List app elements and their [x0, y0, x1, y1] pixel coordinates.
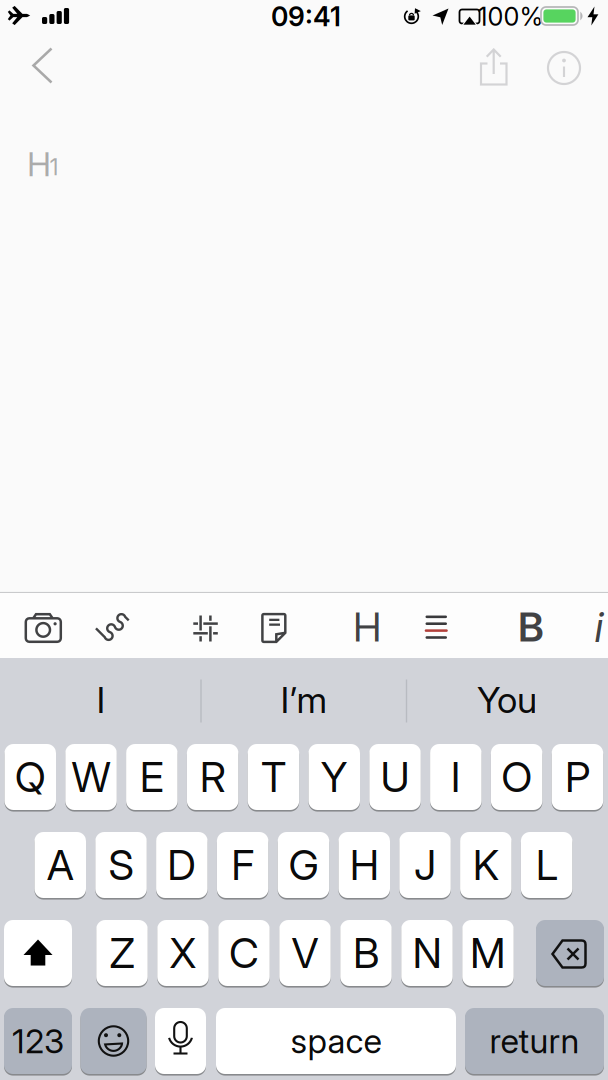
staticText: B — [518, 603, 544, 651]
button[interactable]: W — [65, 743, 117, 811]
button[interactable]: Back — [0, 0, 608, 1080]
staticText: D — [167, 841, 196, 889]
staticText: I — [451, 753, 461, 801]
staticText: P — [565, 753, 590, 801]
button[interactable]: C — [218, 919, 270, 987]
staticText: You — [477, 679, 537, 721]
staticText: Q — [15, 753, 46, 801]
staticText: V — [291, 929, 318, 977]
staticText: K — [473, 841, 499, 889]
button[interactable]: Note — [0, 0, 608, 1080]
button[interactable]: Sketch — [0, 0, 608, 1080]
staticText: U — [380, 753, 409, 801]
staticText: M — [470, 929, 506, 977]
button[interactable]: Info — [0, 0, 608, 1080]
staticText: H — [350, 841, 379, 889]
staticText: space — [290, 1021, 381, 1061]
button[interactable]: You — [412, 667, 602, 733]
button[interactable]: K — [460, 831, 512, 899]
button[interactable]: P — [552, 743, 603, 811]
button[interactable]: Z — [96, 919, 148, 987]
button[interactable]: H — [338, 831, 390, 899]
button[interactable]: D — [156, 831, 208, 899]
staticText: N — [412, 929, 441, 977]
button[interactable]: return — [465, 1007, 604, 1075]
button[interactable]: I — [6, 667, 196, 733]
button[interactable] — [155, 1007, 206, 1075]
staticText: I’m — [280, 679, 327, 721]
staticText: S — [108, 841, 133, 889]
staticText: 1 — [49, 154, 58, 180]
staticText: H — [353, 603, 381, 651]
button[interactable]: I’m — [209, 667, 399, 733]
button[interactable]: B — [340, 919, 392, 987]
staticText: O — [501, 753, 532, 801]
staticText: W — [71, 753, 110, 801]
button[interactable]: Camera — [0, 0, 608, 1080]
staticText: return — [489, 1021, 579, 1061]
button[interactable]: G — [278, 831, 329, 899]
button[interactable]: Q — [4, 743, 56, 811]
button[interactable]: Y — [308, 743, 360, 811]
staticText: A — [47, 841, 74, 889]
button[interactable]: S — [95, 831, 147, 899]
button[interactable]: A — [34, 831, 86, 899]
button[interactable] — [4, 919, 72, 987]
staticText: F — [231, 841, 254, 889]
staticText: R — [200, 753, 226, 801]
button[interactable]: T — [248, 743, 299, 811]
button[interactable] — [80, 1007, 146, 1075]
button[interactable]: Italic — [0, 0, 608, 1080]
button[interactable] — [536, 919, 604, 987]
button[interactable]: V — [279, 919, 331, 987]
staticText: G — [288, 841, 318, 889]
staticText: 09:41 — [271, 1, 341, 32]
staticText: Z — [109, 929, 134, 977]
button[interactable]: Layout — [0, 0, 608, 1080]
button[interactable]: N — [401, 919, 453, 987]
staticText: 100% — [477, 2, 543, 31]
button[interactable]: R — [187, 743, 238, 811]
staticText: T — [261, 753, 286, 801]
staticText: i — [594, 603, 603, 651]
staticText: I — [96, 679, 105, 721]
staticText: 123 — [12, 1021, 64, 1061]
staticText: C — [229, 929, 259, 977]
button[interactable]: L — [521, 831, 572, 899]
staticText: E — [140, 753, 164, 801]
button[interactable]: U — [369, 743, 421, 811]
button[interactable]: J — [399, 831, 451, 899]
button[interactable]: 123 — [4, 1007, 72, 1075]
button[interactable]: Bold — [0, 0, 608, 1080]
staticText: J — [414, 841, 436, 889]
button[interactable]: Share — [0, 0, 608, 1080]
staticText: H — [27, 144, 51, 184]
button[interactable]: List — [0, 0, 608, 1080]
button[interactable]: X — [157, 919, 209, 987]
button[interactable]: O — [491, 743, 542, 811]
button[interactable]: I — [430, 743, 482, 811]
staticText: B — [353, 929, 379, 977]
button[interactable]: space — [216, 1007, 456, 1075]
button[interactable]: Heading — [0, 0, 608, 1080]
staticText: L — [536, 841, 558, 889]
button[interactable]: E — [126, 743, 178, 811]
staticText: X — [169, 929, 196, 977]
staticText: Y — [321, 753, 348, 801]
button[interactable]: M — [462, 919, 514, 987]
button[interactable]: F — [217, 831, 268, 899]
